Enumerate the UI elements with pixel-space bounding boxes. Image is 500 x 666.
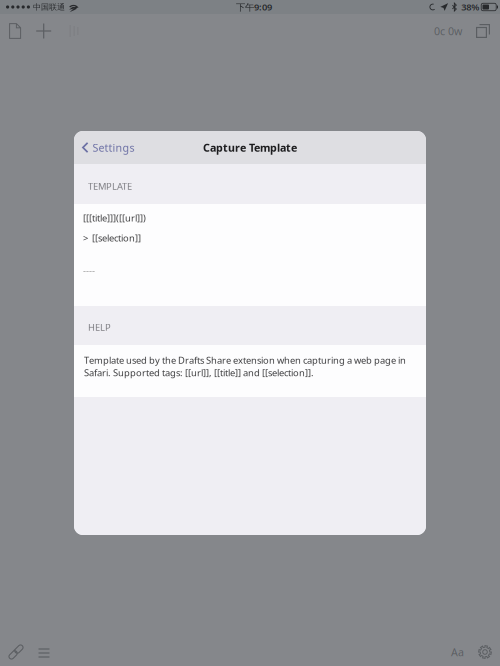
button[interactable]: List: [38, 646, 50, 658]
staticText: ----: [83, 264, 95, 276]
staticText: Aa: [451, 645, 464, 659]
staticText: 中国联通: [33, 2, 65, 12]
staticText: 下午9:09: [236, 1, 272, 13]
staticText: Template used by the Drafts Share extens…: [84, 354, 406, 379]
staticText: 38%: [461, 1, 479, 13]
staticText: HELP: [88, 321, 111, 333]
staticText: TEMPLATE: [88, 180, 132, 192]
staticText: 0c 0w: [434, 24, 462, 38]
button[interactable]: Share: [476, 24, 490, 38]
staticText: [[[title]]]([[url]]): [83, 212, 146, 224]
button[interactable]: Settings: [478, 645, 492, 659]
staticText: Capture Template: [203, 140, 297, 155]
staticText: Settings: [92, 140, 134, 155]
button[interactable]: Link: [8, 644, 24, 660]
button[interactable]: Settings: [74, 134, 144, 161]
staticText: > [[selection]]: [83, 232, 141, 244]
button[interactable]: New Draft: [9, 23, 21, 39]
button[interactable]: Text Size: [451, 645, 464, 659]
button[interactable]: Add Draft: [36, 23, 51, 38]
